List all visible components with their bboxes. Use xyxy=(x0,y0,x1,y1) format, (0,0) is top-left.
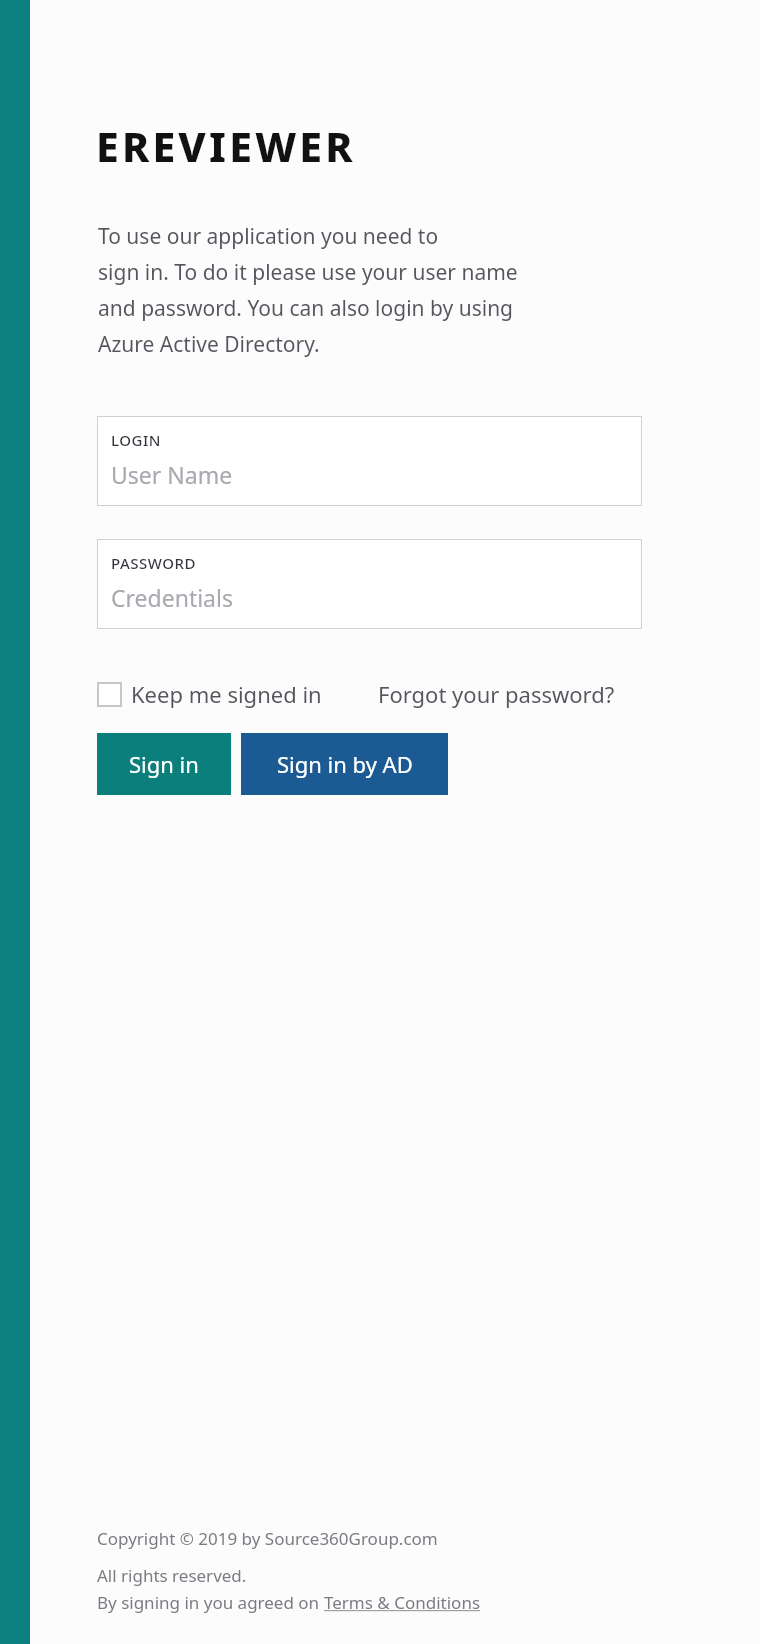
staticText: PASSWORD xyxy=(111,553,196,573)
staticText: Credentials xyxy=(111,582,233,613)
button[interactable]: Forgot your password? xyxy=(378,679,615,709)
button[interactable]: Keep me signed in xyxy=(97,679,322,709)
button[interactable]: Terms & Conditions xyxy=(324,1591,481,1614)
staticText: Sign in by AD xyxy=(277,749,413,779)
staticText: To use our application you need to sign … xyxy=(98,222,518,358)
staticText: User Name xyxy=(111,459,233,490)
staticText: By signing in you agreed on xyxy=(97,1591,324,1614)
button[interactable]: LOGIN xyxy=(97,416,642,506)
button[interactable]: PASSWORD xyxy=(97,539,642,629)
staticText: Copyright © 2019 by Source360Group.com xyxy=(97,1527,438,1550)
staticText: Forgot your password? xyxy=(378,679,615,709)
button[interactable]: Sign in xyxy=(97,733,231,795)
staticText: Sign in xyxy=(129,749,199,779)
button[interactable]: Sign in by AD xyxy=(241,733,448,795)
staticText: Keep me signed in xyxy=(131,679,322,709)
staticText: LOGIN xyxy=(111,430,161,450)
staticText: Terms & Conditions xyxy=(324,1591,481,1614)
staticText: EREVIEWER xyxy=(96,118,356,174)
staticText: All rights reserved. xyxy=(97,1564,247,1587)
